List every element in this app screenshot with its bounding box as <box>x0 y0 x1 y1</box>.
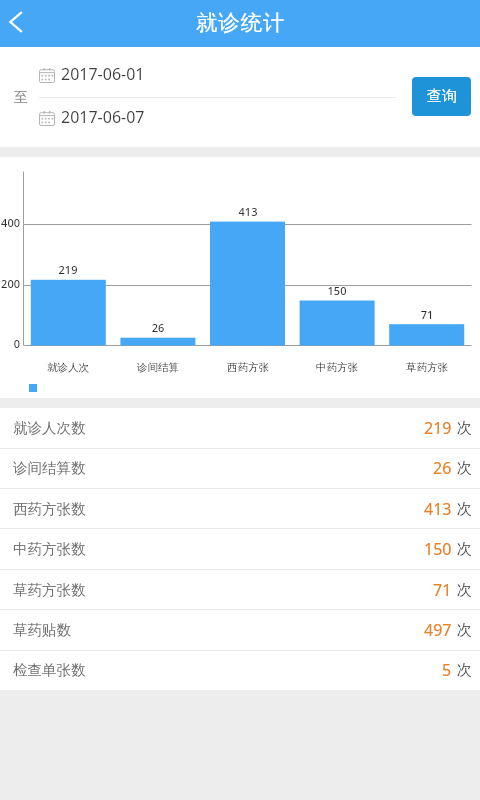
staticText: 至 <box>14 89 28 107</box>
staticText: 26 <box>433 457 452 479</box>
staticText: 中药方张数 <box>13 540 86 558</box>
staticText: 诊间结算数 <box>13 459 86 477</box>
button[interactable]: Back <box>0 2 44 46</box>
staticText: 0 <box>0 336 20 351</box>
staticText: 219 <box>424 417 452 439</box>
staticText: 2017-06-07 <box>61 106 145 128</box>
staticText: 150 <box>424 538 452 560</box>
staticText: 草药贴数 <box>13 621 71 639</box>
staticText: 次 <box>457 540 472 559</box>
button[interactable]: 西药方张数 <box>0 489 480 529</box>
staticText: 2017-06-01 <box>61 63 145 85</box>
staticText: 次 <box>457 621 472 640</box>
staticText: 次 <box>457 419 472 438</box>
staticText: 71 <box>377 307 477 322</box>
staticText: 次 <box>457 459 472 478</box>
button[interactable]: 就诊人次数 <box>0 408 480 448</box>
button[interactable]: 草药贴数 <box>0 610 480 650</box>
staticText: 次 <box>457 581 472 600</box>
button[interactable]: 中药方张数 <box>0 529 480 569</box>
staticText: 就诊统计 <box>196 9 286 36</box>
staticText: 草药方张数 <box>13 581 86 599</box>
staticText: 西药方张 <box>198 361 298 374</box>
staticText: 26 <box>108 320 208 335</box>
button[interactable]: Pick date <box>39 64 145 86</box>
button[interactable]: 诊间结算数 <box>0 448 480 488</box>
staticText: 219 <box>18 262 118 277</box>
button[interactable]: Pick date <box>39 107 145 129</box>
other: Pick date <box>39 67 55 83</box>
staticText: 草药方张 <box>377 361 477 374</box>
staticText: 71 <box>433 579 452 601</box>
staticText: 413 <box>198 204 298 219</box>
staticText: 就诊人次 <box>18 361 118 374</box>
staticText: 200 <box>0 276 20 291</box>
staticText: 中药方张 <box>287 361 387 374</box>
staticText: 次 <box>457 500 472 519</box>
staticText: 次 <box>457 661 472 680</box>
staticText: 检查单张数 <box>13 661 86 679</box>
button[interactable]: 检查单张数 <box>0 650 480 690</box>
staticText: 400 <box>0 215 20 230</box>
staticText: 查询 <box>427 87 457 106</box>
staticText: 诊间结算 <box>108 361 208 374</box>
staticText: 150 <box>287 283 387 298</box>
staticText: 就诊人次数 <box>13 419 86 437</box>
button[interactable]: 查询 <box>412 77 471 116</box>
staticText: 413 <box>424 498 452 520</box>
staticText: 5 <box>442 659 452 681</box>
button[interactable]: 草药方张数 <box>0 570 480 610</box>
other: Pick date <box>39 110 55 126</box>
staticText: 西药方张数 <box>13 500 86 518</box>
staticText: 497 <box>424 619 452 641</box>
